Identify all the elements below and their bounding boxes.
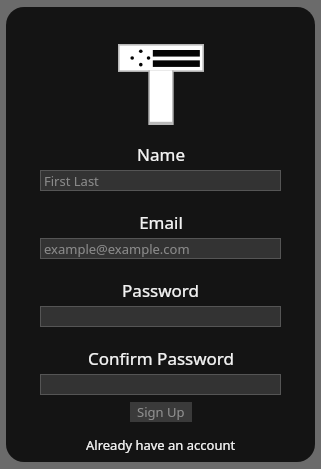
staticText: Email [139,211,183,234]
staticText: Name [137,143,185,166]
staticText: Confirm Password [88,347,234,370]
staticText: Already have an account [86,436,236,454]
button[interactable] [40,306,281,327]
staticText: Sign Up [137,403,185,421]
button[interactable]: example@example.com [40,238,281,259]
button[interactable]: Sign Up [130,402,192,422]
button[interactable]: Already have an account [80,434,242,456]
staticText: example@example.com [44,240,190,258]
staticText: First Last [44,172,99,190]
button[interactable]: First Last [40,170,281,191]
other: App logo [118,44,204,125]
button[interactable] [40,374,281,395]
staticText: Password [122,279,199,302]
